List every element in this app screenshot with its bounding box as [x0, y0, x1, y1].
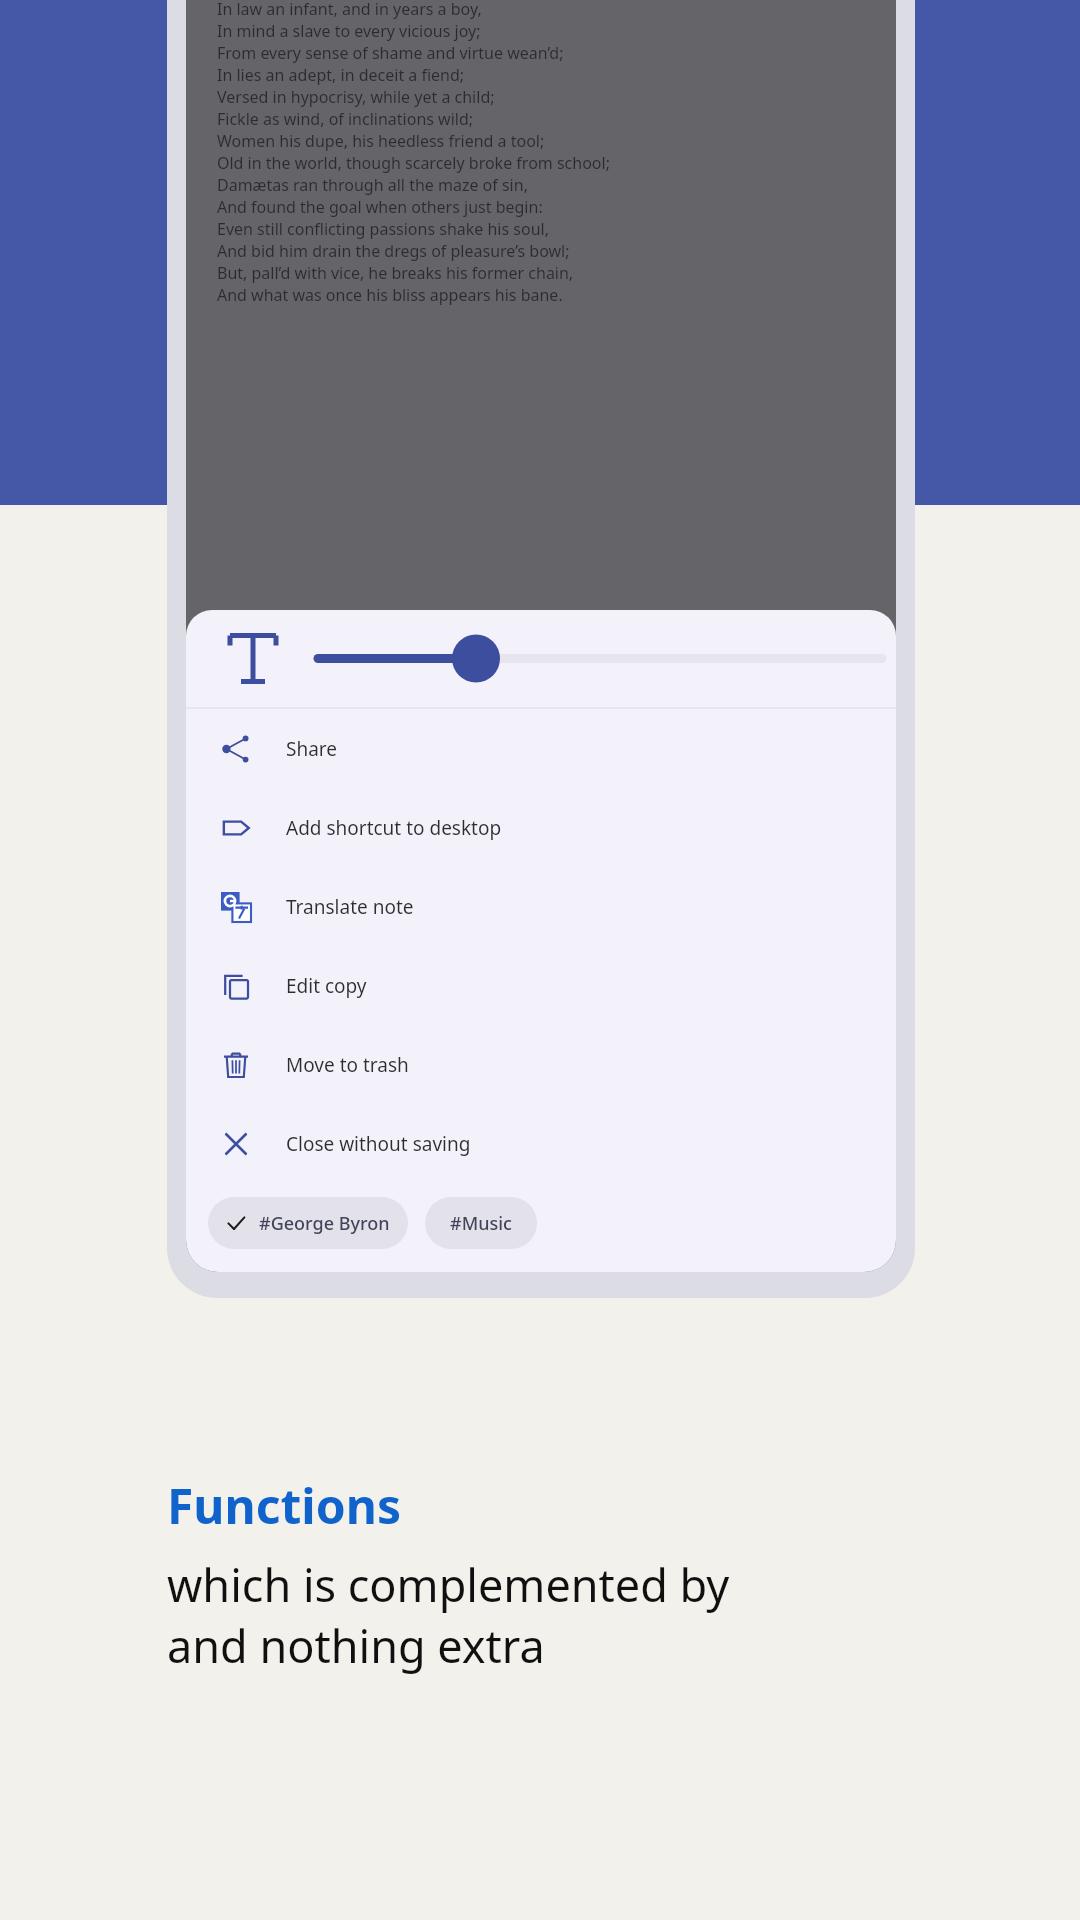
button[interactable]: Move to trash	[186, 1025, 896, 1104]
staticText: In law an infant, and in years a boy,	[217, 0, 482, 20]
staticText: Move to trash	[286, 1052, 409, 1078]
button[interactable]: Add shortcut to desktop	[186, 788, 896, 867]
staticText: #George Byron	[259, 1211, 390, 1236]
button[interactable]: Share	[186, 709, 896, 788]
staticText: which is complemented by	[167, 1554, 730, 1615]
staticText: Translate note	[286, 894, 414, 920]
button[interactable]: Edit copy	[186, 946, 896, 1025]
staticText: Share	[286, 736, 338, 762]
button[interactable]: #Music	[425, 1197, 537, 1249]
staticText: Edit copy	[286, 973, 367, 999]
button[interactable]: #George Byron	[208, 1197, 408, 1249]
staticText: Old in the world, though scarcely broke …	[217, 152, 610, 174]
staticText: Versed in hypocrisy, while yet a child;	[217, 86, 495, 108]
staticText: Damætas ran through all the maze of sin,	[217, 174, 528, 196]
button[interactable]: Translate note	[186, 867, 896, 946]
staticText: In lies an adept, in deceit a fiend;	[217, 64, 465, 86]
staticText: From every sense of shame and virtue wea…	[217, 42, 564, 64]
staticText: Fickle as wind, of inclinations wild;	[217, 108, 474, 130]
staticText: Even still conflicting passions shake hi…	[217, 218, 549, 240]
staticText: and nothing extra	[167, 1615, 545, 1676]
button[interactable]: Close without saving	[186, 1104, 896, 1183]
staticText: But, pall’d with vice, he breaks his for…	[217, 262, 574, 284]
button[interactable]: Text size	[186, 610, 896, 707]
staticText: Add shortcut to desktop	[286, 815, 502, 841]
staticText: And bid him drain the dregs of pleasure’…	[217, 240, 570, 262]
staticText: Close without saving	[286, 1131, 471, 1157]
staticText: And what was once his bliss appears his …	[217, 284, 563, 306]
staticText: Functions	[167, 1473, 402, 1538]
staticText: #Music	[450, 1211, 512, 1236]
staticText: In mind a slave to every vicious joy;	[217, 20, 481, 42]
staticText: Women his dupe, his heedless friend a to…	[217, 130, 545, 152]
staticText: And found the goal when others just begi…	[217, 196, 543, 218]
